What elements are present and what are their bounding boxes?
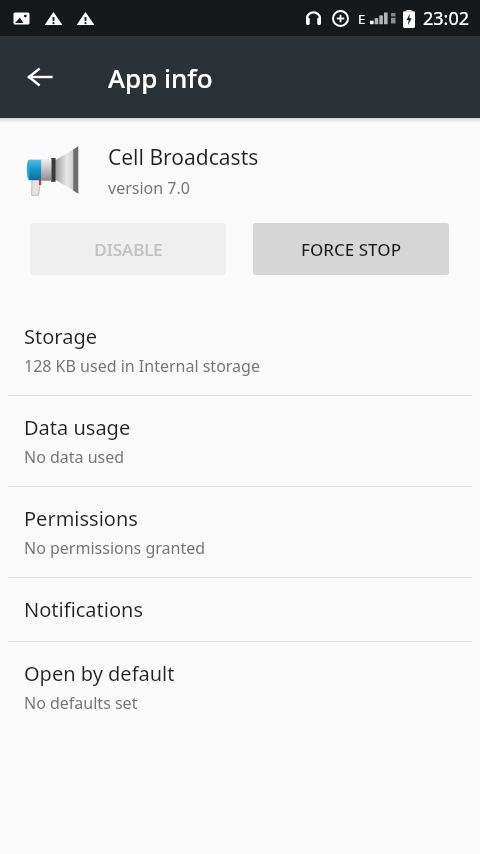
staticText: version 7.0 xyxy=(108,177,190,199)
staticText: Cell Broadcasts xyxy=(108,143,259,172)
staticText: 128 KB used in Internal storage xyxy=(24,355,260,377)
button[interactable]: Notifications xyxy=(0,578,480,641)
staticText: 23:02 xyxy=(423,6,470,31)
staticText: No data used xyxy=(24,446,125,468)
staticText: App info xyxy=(108,60,213,95)
staticText: E xyxy=(358,10,366,28)
staticText: Notifications xyxy=(24,596,143,623)
staticText: Open by default xyxy=(24,660,175,687)
button[interactable]: DISABLE xyxy=(30,223,226,275)
button[interactable]: Permissions xyxy=(0,487,480,577)
staticText: No permissions granted xyxy=(24,537,206,559)
button[interactable]: Back xyxy=(16,53,64,101)
button[interactable]: FORCE STOP xyxy=(253,223,449,275)
button[interactable]: Open by default xyxy=(0,642,480,732)
staticText: Data usage xyxy=(24,414,131,441)
staticText: Storage xyxy=(24,323,97,350)
staticText: No defaults set xyxy=(24,692,138,714)
button[interactable]: Storage xyxy=(0,305,480,395)
staticText: Permissions xyxy=(24,505,138,532)
staticText: FORCE STOP xyxy=(301,238,401,261)
button[interactable]: Data usage xyxy=(0,396,480,486)
staticText: DISABLE xyxy=(94,238,163,261)
